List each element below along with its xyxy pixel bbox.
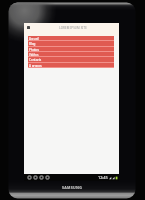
staticText: Blog <box>29 42 36 46</box>
button[interactable]: Home <box>32 174 38 181</box>
staticText: Vidéos <box>29 53 39 57</box>
button[interactable]: Blog <box>28 41 114 47</box>
staticText: Photos <box>29 48 39 52</box>
staticText: A propos <box>29 64 42 68</box>
button[interactable]: Recents <box>38 174 44 181</box>
staticText: SAMSUNG <box>62 185 83 190</box>
button[interactable]: Back <box>26 174 32 181</box>
button[interactable]: App menu <box>27 26 30 29</box>
staticText: LOREM IPSUM SITE <box>59 26 87 30</box>
button[interactable]: Vidéos <box>28 52 114 57</box>
button[interactable]: Accueil <box>28 36 114 41</box>
button[interactable]: A propos <box>28 63 114 68</box>
staticText: Accueil <box>29 37 39 41</box>
staticText: Contacts <box>29 58 42 62</box>
button[interactable]: Photos <box>28 47 114 52</box>
button[interactable]: Contacts <box>28 57 114 63</box>
staticText: 12:45 <box>98 175 108 180</box>
button[interactable]: Screenshot <box>44 174 50 181</box>
